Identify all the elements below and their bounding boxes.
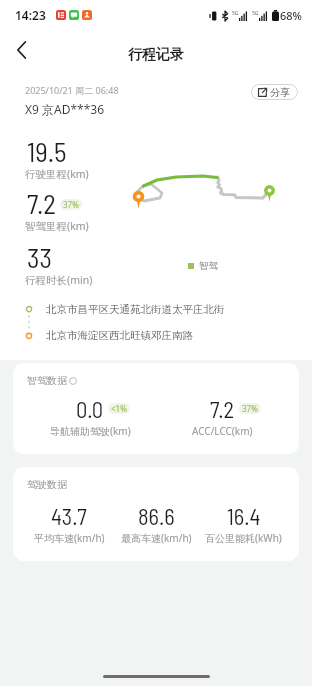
staticText: 行驶里程(km) [25, 167, 89, 181]
staticText: 导航辅助驾驶(km) [50, 424, 131, 438]
staticText: <1% [111, 403, 127, 414]
staticText: ACC/LCC(km) [192, 424, 253, 438]
staticText: 0.0 [76, 395, 104, 422]
staticText: 19.5 [27, 135, 67, 167]
staticText: 最高车速(km/h) [121, 531, 192, 545]
staticText: 智驾里程(km) [25, 219, 89, 233]
staticText: 37% [63, 199, 79, 210]
staticText: 37% [242, 403, 258, 414]
staticText: 2025/10/21 周二 06:48 [25, 84, 119, 96]
staticText: 14:23 [15, 7, 46, 23]
staticText: 5G [232, 10, 239, 17]
staticText: 5G [252, 10, 259, 17]
staticText: 行程时长(min) [25, 273, 93, 287]
staticText: 7.2 [27, 187, 56, 219]
staticText: 行程记录 [128, 46, 184, 64]
staticText: 平均车速(km/h) [34, 531, 105, 545]
staticText: 驾驶数据 [27, 478, 67, 491]
button[interactable]: Back [0, 30, 42, 70]
staticText: 43.7 [51, 502, 87, 529]
staticText: 分享 [270, 86, 290, 99]
staticText: 86.6 [138, 502, 175, 529]
staticText: 7.2 [210, 395, 235, 422]
button[interactable]: 分享 [251, 84, 298, 100]
staticText: 智驾数据 [27, 374, 67, 387]
staticText: 北京市昌平区天通苑北街道太平庄北街 [46, 303, 225, 316]
staticText: 百公里能耗(kWh) [205, 531, 282, 545]
staticText: 智驾 [199, 260, 218, 272]
staticText: 68% [280, 8, 302, 23]
staticText: 33 [27, 241, 52, 273]
staticText: X9 京AD***36 [25, 101, 105, 117]
staticText: 16.4 [227, 502, 261, 529]
staticText: 北京市海淀区西北旺镇邓庄南路 [46, 329, 193, 342]
